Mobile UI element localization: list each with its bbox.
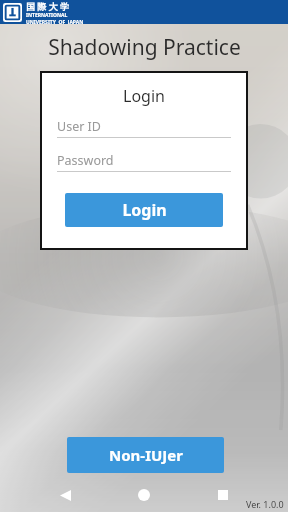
staticText: Non-IUJer — [109, 445, 183, 465]
staticText: Ver. 1.0.0 — [246, 498, 284, 510]
button[interactable]: Recent apps — [210, 482, 236, 508]
button[interactable]: Login — [65, 193, 223, 227]
button[interactable]: Home — [131, 482, 157, 508]
staticText: INTERNATIONAL — [26, 12, 68, 19]
button[interactable]: Password — [57, 149, 231, 171]
staticText: 国 際 大 学 — [26, 0, 70, 12]
staticText: Password — [57, 152, 114, 169]
staticText: Login — [123, 85, 165, 107]
staticText: UNIVERSITY OF JAPAN — [26, 19, 84, 24]
button[interactable]: Back — [52, 482, 78, 508]
staticText: Login — [122, 199, 167, 221]
staticText: Shadowing Practice — [48, 33, 241, 62]
button[interactable]: User ID — [57, 115, 231, 137]
staticText: User ID — [57, 118, 101, 135]
button[interactable]: Non-IUJer — [67, 437, 224, 473]
